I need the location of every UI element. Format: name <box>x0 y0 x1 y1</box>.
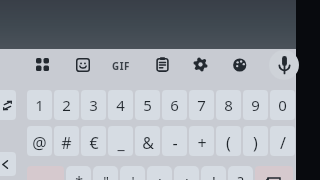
button[interactable]: / <box>270 126 295 156</box>
button[interactable]: 6 <box>162 90 187 120</box>
button[interactable]: @ <box>27 126 52 156</box>
staticText: @ <box>32 132 47 154</box>
button[interactable]: 8 <box>216 90 241 120</box>
button[interactable]: Stickers <box>71 53 95 77</box>
button[interactable]: 0 <box>270 90 295 120</box>
staticText: # <box>61 132 72 154</box>
button[interactable]: ' <box>120 166 145 180</box>
button[interactable]: ? <box>228 166 253 180</box>
staticText: 3 <box>89 95 98 115</box>
button[interactable]: Clipboard <box>150 52 175 77</box>
staticText: * <box>75 172 83 180</box>
button[interactable]: 1 <box>27 90 52 120</box>
button[interactable]: & <box>135 126 160 156</box>
button[interactable]: - <box>162 126 187 156</box>
staticText: € <box>89 132 99 154</box>
staticText: _ <box>117 132 125 154</box>
button[interactable]: 4 <box>108 90 133 120</box>
button[interactable]: 2 <box>54 90 79 120</box>
button[interactable]: 9 <box>243 90 268 120</box>
button[interactable]: ( <box>216 126 241 156</box>
staticText: 2 <box>62 95 71 115</box>
staticText: 6 <box>170 95 179 115</box>
button[interactable]: Voice input <box>269 50 299 80</box>
staticText: ; <box>185 172 189 180</box>
staticText: 1 <box>35 95 44 115</box>
button[interactable]: Backspace <box>255 166 293 180</box>
staticText: 9 <box>251 95 260 115</box>
staticText: 0 <box>278 95 287 115</box>
button[interactable]: 3 <box>81 90 106 120</box>
button[interactable]: # <box>54 126 79 156</box>
button[interactable]: Themes <box>228 53 252 77</box>
staticText: : <box>158 172 162 180</box>
button[interactable]: 5 <box>135 90 160 120</box>
staticText: ? <box>237 172 244 180</box>
staticText: - <box>172 132 178 154</box>
staticText: 4 <box>116 95 125 115</box>
button[interactable]: Previous <box>0 152 16 176</box>
button[interactable]: Switch apps <box>31 53 54 76</box>
staticText: ( <box>226 132 231 154</box>
staticText: ' <box>131 172 135 180</box>
staticText: 7 <box>197 95 206 115</box>
staticText: GIF <box>112 60 131 73</box>
button[interactable]: € <box>81 126 106 156</box>
staticText: + <box>197 132 207 154</box>
staticText: / <box>280 132 286 154</box>
staticText: " <box>103 172 109 180</box>
button[interactable]: _ <box>108 126 133 156</box>
staticText: ) <box>253 132 258 154</box>
button[interactable]: Resize keyboard <box>0 90 16 120</box>
button[interactable]: ! <box>201 166 226 180</box>
staticText: 5 <box>143 95 152 115</box>
staticText: 8 <box>224 95 233 115</box>
button[interactable]: " <box>93 166 118 180</box>
button[interactable]: Settings <box>189 53 212 76</box>
staticText: & <box>142 132 154 154</box>
button[interactable]: + <box>189 126 214 156</box>
button[interactable]: 7 <box>189 90 214 120</box>
button[interactable]: : <box>147 166 172 180</box>
button[interactable]: ; <box>174 166 199 180</box>
button[interactable]: GIF <box>108 53 134 79</box>
button[interactable]: ) <box>243 126 268 156</box>
button[interactable]: * <box>66 166 91 180</box>
staticText: ! <box>212 172 216 180</box>
